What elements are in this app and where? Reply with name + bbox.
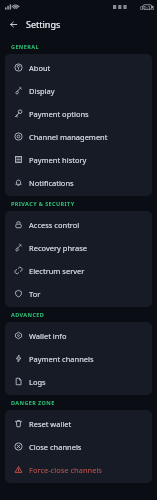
staticText: ADVANCED [11,311,45,318]
staticText: Close channels [29,442,82,452]
staticText: 01:13 [140,4,155,11]
staticText: DANGER ZONE [11,399,55,406]
button[interactable]: Access control [5,213,152,236]
button[interactable]: Payment channels [5,347,152,370]
button[interactable]: Display [5,79,152,102]
staticText: Recovery phrase [29,243,88,253]
button[interactable]: Notifications [5,171,152,194]
staticText: Channel management [29,132,108,142]
button[interactable]: Payment history [5,148,152,171]
staticText: GENERAL [11,43,39,50]
staticText: Payment history [29,155,87,165]
button[interactable]: Close channels [5,435,152,458]
button[interactable]: About [5,56,152,79]
staticText: Electrum server [29,266,85,276]
staticText: Payment options [29,109,89,119]
button[interactable]: Back [5,16,21,32]
button[interactable]: Logs [5,370,152,393]
button[interactable]: Wallet info [5,324,152,347]
button[interactable]: Reset wallet [5,412,152,435]
staticText: Force-close channels [29,465,102,475]
staticText: About [29,63,51,73]
staticText: PRIVACY & SECURITY [11,200,75,207]
button[interactable]: Channel management [5,125,152,148]
staticText: Settings [26,18,61,30]
staticText: Tor [29,289,41,299]
staticText: Notifications [29,178,74,188]
staticText: Payment channels [29,354,94,364]
button[interactable]: Force-close channels [5,458,152,481]
staticText: Logs [29,377,46,387]
staticText: Access control [29,220,80,230]
staticText: Wallet info [29,331,67,341]
button[interactable]: Payment options [5,102,152,125]
button[interactable]: Electrum server [5,259,152,282]
button[interactable]: Recovery phrase [5,236,152,259]
staticText: Display [29,86,55,96]
staticText: Reset wallet [29,419,72,429]
button[interactable]: Tor [5,282,152,305]
